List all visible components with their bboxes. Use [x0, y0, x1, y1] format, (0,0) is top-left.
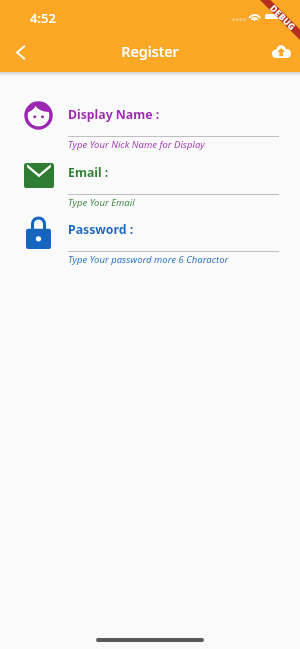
- staticText: Email :: [68, 164, 109, 181]
- button[interactable]: Back: [3, 35, 37, 69]
- staticText: DEBUG: [267, 2, 298, 33]
- staticText: Register: [0, 41, 300, 61]
- staticText: Display Name :: [68, 106, 160, 123]
- staticText: 4:52: [30, 9, 56, 27]
- button[interactable]: Display Name :: [0, 96, 300, 152]
- button[interactable]: Upload: [264, 34, 298, 68]
- staticText: Password :: [68, 221, 134, 238]
- staticText: Type Your Nick Name for Display: [68, 138, 205, 151]
- staticText: Type Your password more 6 Charactor: [68, 253, 229, 266]
- staticText: Type Your Email: [68, 196, 135, 209]
- button[interactable]: Password :: [0, 211, 300, 267]
- button[interactable]: Email :: [0, 154, 300, 210]
